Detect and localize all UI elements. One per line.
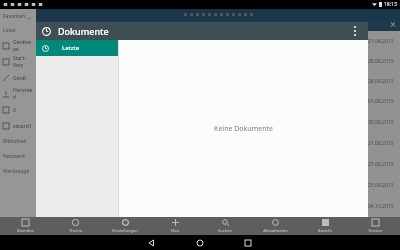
staticText: 28.08.2015 xyxy=(368,58,394,65)
staticText: Fenster xyxy=(368,228,383,233)
staticText: Gerätespe xyxy=(13,39,33,53)
staticText: Herunterl xyxy=(13,87,33,101)
button[interactable]: Thema xyxy=(50,217,100,235)
staticText: Werkzeuge xyxy=(3,168,30,175)
staticText: 28.09.2015 xyxy=(368,78,394,85)
button[interactable]: Gerät xyxy=(0,70,36,86)
staticText: Lokal xyxy=(3,27,16,34)
staticText: 27.08.2015 xyxy=(368,161,394,168)
staticText: Gerät xyxy=(13,75,27,82)
staticText: Keine Dokumente xyxy=(214,124,273,134)
staticText: Neu xyxy=(171,228,179,233)
staticText: 0 xyxy=(13,107,16,114)
staticText: Aktualisieren xyxy=(263,228,288,233)
staticText: Einstellungen xyxy=(112,228,138,233)
staticText: Bibliothek xyxy=(3,138,27,145)
staticText: Suchen xyxy=(218,228,232,233)
button[interactable]: Gerätespe xyxy=(0,38,36,54)
button[interactable]: Neu xyxy=(150,217,200,235)
staticText: sdcard1 xyxy=(13,123,32,130)
button[interactable]: Back xyxy=(147,238,157,248)
staticText: 25.09.2015 xyxy=(368,182,394,189)
button[interactable]: Start-Verz xyxy=(0,54,36,70)
button[interactable]: Herunterl xyxy=(0,86,36,102)
staticText: Thema xyxy=(69,228,82,233)
staticText: 30.08.2015 xyxy=(368,119,394,126)
button[interactable]: 0 xyxy=(0,102,36,118)
button[interactable]: Einstellungen xyxy=(100,217,150,235)
button[interactable]: Suchen xyxy=(200,217,250,235)
button[interactable]: sdcard1 xyxy=(0,118,36,134)
button[interactable]: Fenster xyxy=(350,217,400,235)
button[interactable]: Ansicht xyxy=(300,217,350,235)
button[interactable]: Home xyxy=(195,238,205,248)
button[interactable]: Beenden xyxy=(0,217,50,235)
staticText: 18:13 xyxy=(384,1,397,8)
staticText: Dokumente xyxy=(58,25,109,37)
staticText: Start-Verz xyxy=(13,55,33,69)
button[interactable]: Letzte xyxy=(36,40,118,56)
other: Recent xyxy=(42,27,51,36)
staticText: 21.08.2015 xyxy=(368,140,394,147)
staticText: 01.08.2015 xyxy=(368,98,394,105)
staticText: 21.08.2015 xyxy=(368,38,394,45)
staticText: Netzwerk xyxy=(3,153,26,160)
staticText: Favoriten xyxy=(3,13,26,20)
button[interactable]: More options xyxy=(348,24,362,38)
button[interactable]: Recents xyxy=(243,238,253,248)
button[interactable]: Aktualisieren xyxy=(250,217,300,235)
staticText: ⌄ xyxy=(27,13,33,20)
staticText: 04.10.2015 xyxy=(368,203,394,210)
staticText: ✕ xyxy=(390,21,396,29)
staticText: Letzte xyxy=(62,44,80,52)
staticText: Ansicht xyxy=(318,228,332,233)
staticText: Beenden xyxy=(17,228,34,233)
